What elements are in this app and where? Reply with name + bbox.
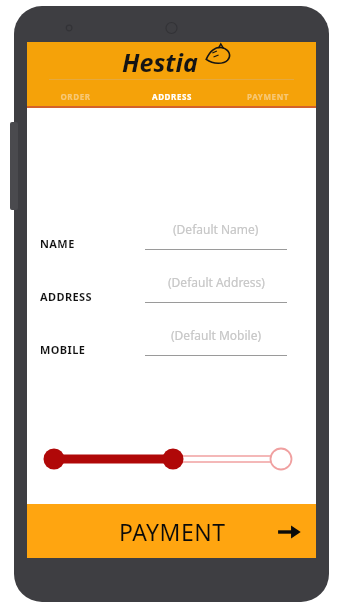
button[interactable]: ADDRESS [27,273,316,307]
button[interactable]: ADDRESS [124,86,220,106]
staticText: PAYMENT [119,516,226,547]
staticText: (Default Mobile) [171,327,262,343]
staticText: (Default Name) [173,221,259,237]
staticText: Hestia [122,45,198,79]
button[interactable]: Progress step 2 of 3 [27,442,316,476]
button[interactable]: MOBILE [27,326,316,360]
staticText: ADDRESS [40,289,93,304]
button[interactable]: PAYMENT [220,86,316,106]
button[interactable]: PAYMENT [27,504,316,558]
staticText: (Default Address) [168,274,265,290]
staticText: ORDER [60,91,91,102]
button[interactable]: ORDER [27,86,124,106]
staticText: MOBILE [40,342,86,357]
staticText: ADDRESS [152,91,192,102]
button[interactable]: NAME [27,220,316,254]
staticText: NAME [40,236,75,251]
staticText: PAYMENT [247,91,289,102]
